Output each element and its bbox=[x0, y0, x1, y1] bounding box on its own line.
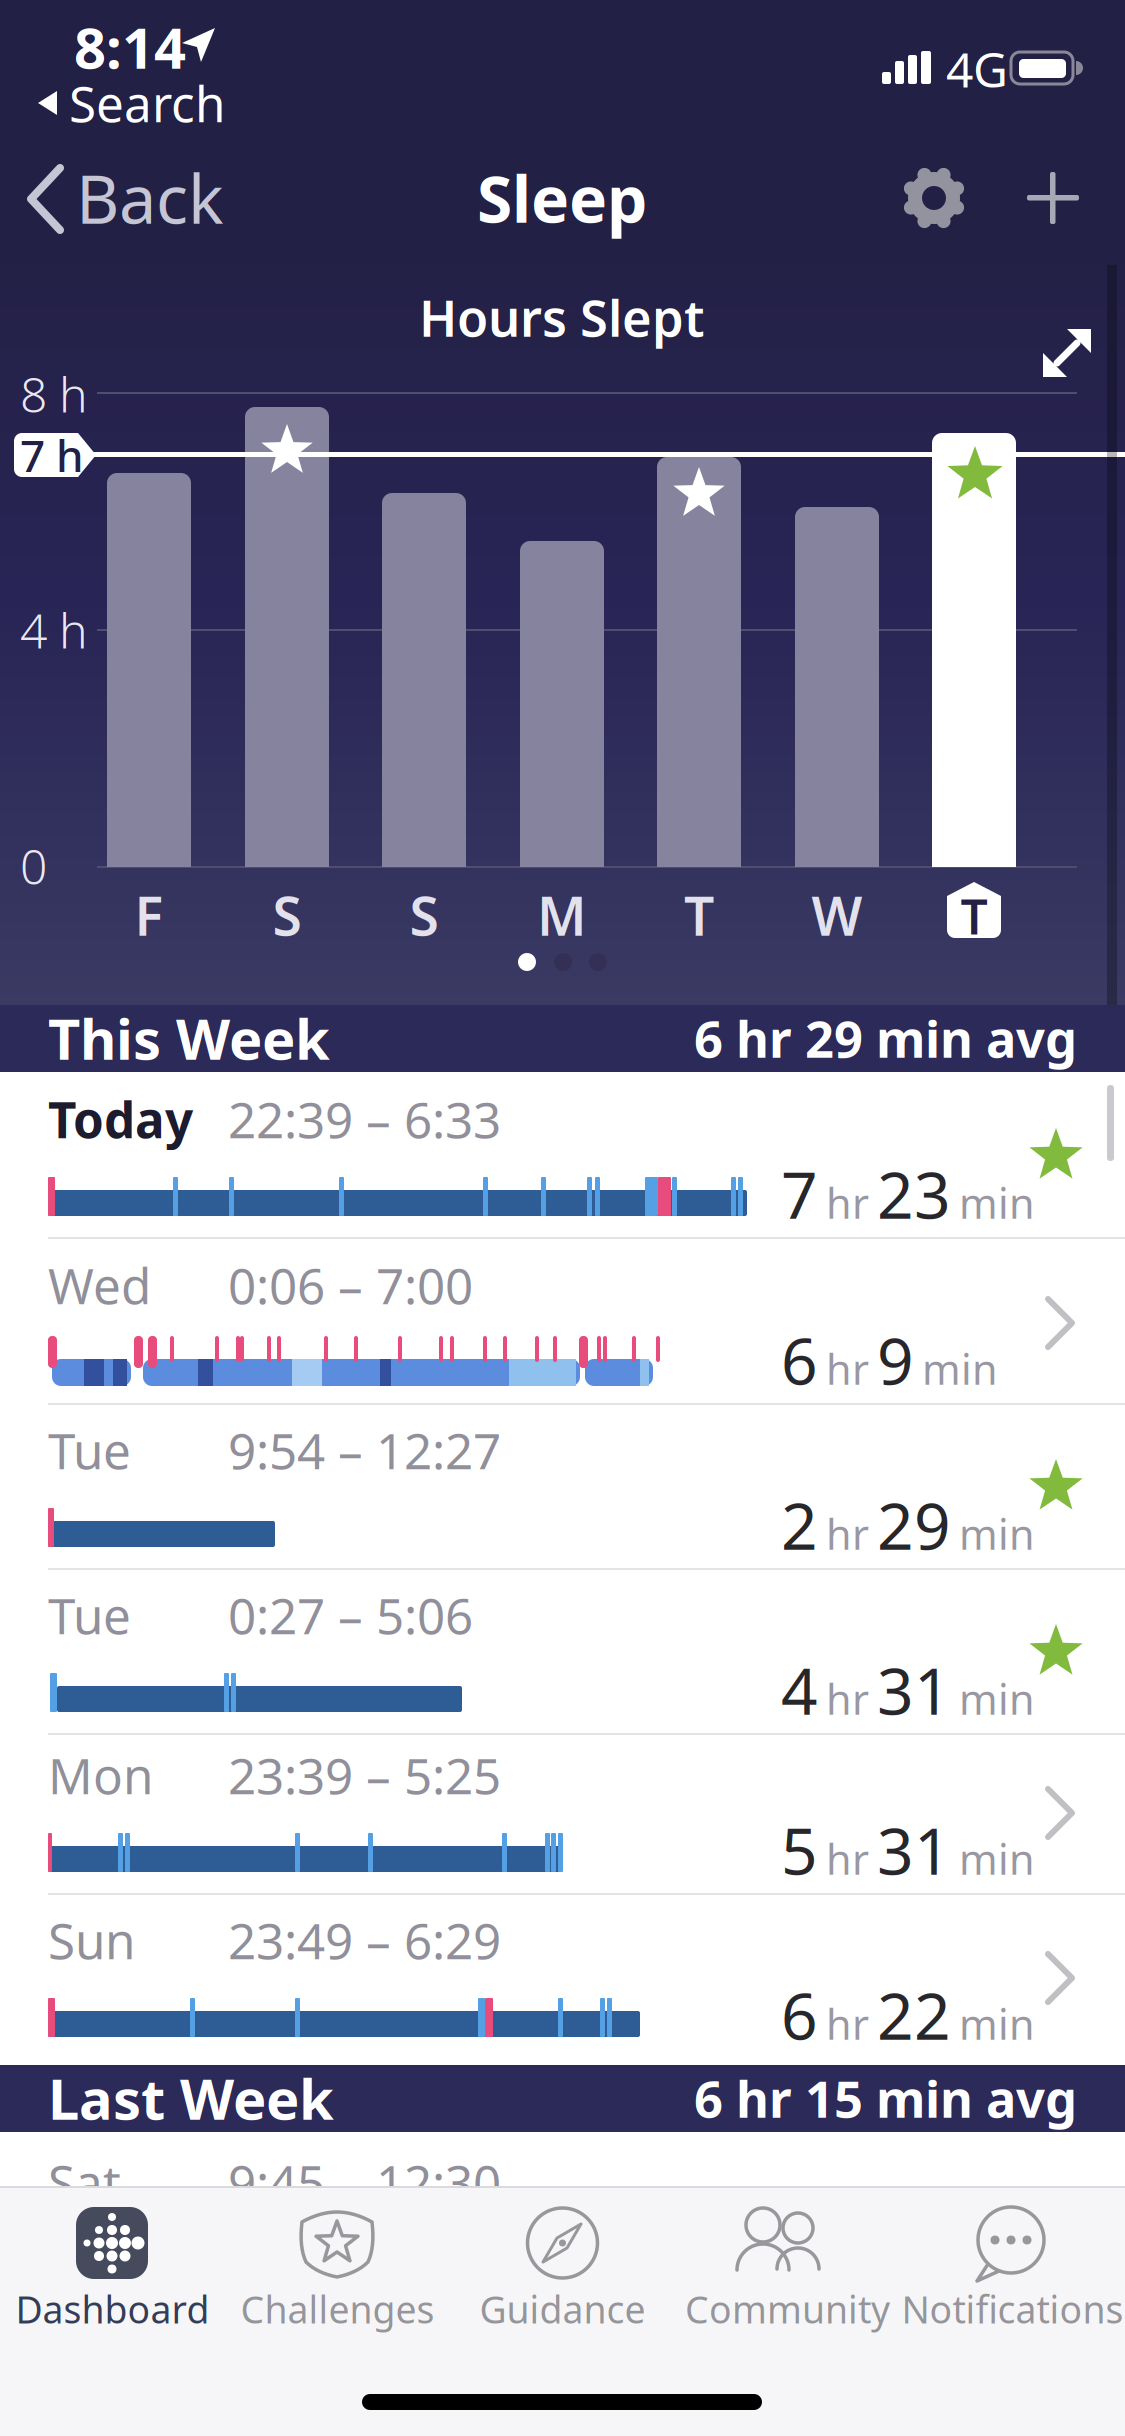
staticText: 7 h bbox=[20, 426, 84, 484]
button[interactable]: Dashboard bbox=[0, 2186, 225, 2356]
staticText: 7 bbox=[781, 1151, 818, 1236]
staticText: 23:39 – 5:25 bbox=[228, 1742, 501, 1808]
button[interactable]: Add bbox=[997, 143, 1107, 253]
staticText: S bbox=[409, 880, 438, 950]
staticText: 23 bbox=[877, 1151, 951, 1236]
staticText: 6 hr 29 min avg bbox=[694, 1004, 1077, 1072]
staticText: 2 bbox=[781, 1482, 818, 1567]
staticText: 9 bbox=[877, 1317, 914, 1402]
staticText: Guidance bbox=[479, 2284, 645, 2334]
staticText: 6 bbox=[781, 1972, 818, 2057]
staticText: hr bbox=[826, 1831, 869, 1886]
staticText: 22:39 – 6:33 bbox=[228, 1086, 501, 1152]
staticText: 9:45 – 12:30 bbox=[228, 2149, 501, 2215]
staticText: 22 bbox=[877, 1972, 951, 2057]
staticText: 0:06 – 7:00 bbox=[228, 1252, 473, 1318]
staticText: min bbox=[959, 1831, 1035, 1886]
staticText: 5 bbox=[781, 1807, 818, 1892]
staticText: 6 hr 15 min avg bbox=[694, 2064, 1077, 2132]
staticText: hr bbox=[826, 1671, 869, 1726]
staticText: 8:14 bbox=[74, 10, 186, 84]
button[interactable]: Guidance bbox=[450, 2186, 675, 2356]
staticText: S bbox=[272, 880, 301, 950]
staticText: 0:27 – 5:06 bbox=[228, 1582, 473, 1648]
staticText: min bbox=[922, 1341, 998, 1396]
staticText: 4 bbox=[781, 1647, 818, 1732]
staticText: T bbox=[960, 884, 987, 948]
staticText: 8 h bbox=[20, 362, 88, 426]
button[interactable]: Settings bbox=[879, 143, 989, 253]
button[interactable]: Community bbox=[675, 2186, 900, 2356]
button[interactable]: Back bbox=[0, 150, 240, 250]
staticText: 9:54 – 12:27 bbox=[228, 1417, 501, 1483]
button[interactable]: Tue bbox=[0, 1568, 1125, 1733]
staticText: Wed bbox=[48, 1252, 151, 1318]
button[interactable]: Today bbox=[0, 1072, 1125, 1237]
staticText: Sun bbox=[48, 1907, 135, 1973]
staticText: min bbox=[959, 1671, 1035, 1726]
staticText: 29 bbox=[877, 1482, 951, 1567]
staticText: Sleep bbox=[477, 155, 647, 240]
staticText: Challenges bbox=[240, 2284, 434, 2334]
staticText: 31 bbox=[877, 1807, 951, 1892]
staticText: min bbox=[959, 1175, 1035, 1230]
staticText: Tue bbox=[48, 1417, 131, 1483]
staticText: Sat bbox=[48, 2149, 121, 2215]
staticText: 6 bbox=[781, 1317, 818, 1402]
staticText: min bbox=[959, 1996, 1035, 2051]
staticText: Mon bbox=[48, 1742, 153, 1808]
staticText: Back bbox=[76, 154, 224, 242]
staticText: hr bbox=[826, 1175, 869, 1230]
staticText: Today bbox=[48, 1086, 193, 1152]
staticText: 23:49 – 6:29 bbox=[228, 1907, 501, 1973]
staticText: hr bbox=[826, 1996, 869, 2051]
staticText: 4 h bbox=[20, 598, 88, 662]
staticText: Dashboard bbox=[15, 2284, 209, 2334]
staticText: W bbox=[811, 880, 862, 950]
staticText: Search bbox=[69, 70, 225, 136]
button[interactable]: Wed bbox=[0, 1238, 1125, 1403]
staticText: 0 bbox=[20, 834, 47, 898]
staticText: T bbox=[684, 880, 714, 950]
staticText: This Week bbox=[48, 1001, 330, 1075]
staticText: Last Week bbox=[48, 2061, 334, 2135]
staticText: hr bbox=[826, 1506, 869, 1561]
button[interactable]: Search bbox=[30, 75, 280, 131]
staticText: F bbox=[134, 880, 163, 950]
staticText: Hours Slept bbox=[419, 283, 705, 351]
staticText: M bbox=[537, 880, 587, 950]
staticText: 31 bbox=[877, 1647, 951, 1732]
button[interactable]: Mon bbox=[0, 1728, 1125, 1893]
staticText: hr bbox=[826, 1341, 869, 1396]
staticText: Notifications bbox=[901, 2284, 1123, 2334]
staticText: 4G bbox=[946, 37, 1008, 101]
staticText: min bbox=[959, 1506, 1035, 1561]
button[interactable]: Tue bbox=[0, 1403, 1125, 1568]
button[interactable]: Notifications bbox=[900, 2186, 1125, 2356]
button[interactable]: Sun bbox=[0, 1893, 1125, 2058]
staticText: Community bbox=[685, 2284, 890, 2334]
button[interactable]: Challenges bbox=[225, 2186, 450, 2356]
button[interactable]: Expand chart bbox=[1025, 311, 1109, 395]
staticText: Tue bbox=[48, 1582, 131, 1648]
